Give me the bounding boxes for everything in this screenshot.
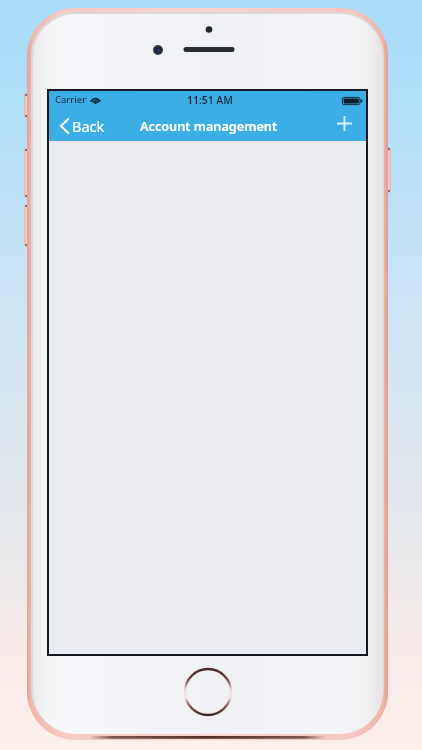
- button[interactable]: Back: [49, 112, 117, 140]
- staticText: Carrier: [55, 93, 87, 106]
- staticText: Account management: [140, 117, 278, 134]
- button[interactable]: Add account: [327, 111, 366, 140]
- staticText: Back: [72, 116, 105, 136]
- staticText: 11:51 AM: [187, 93, 233, 107]
